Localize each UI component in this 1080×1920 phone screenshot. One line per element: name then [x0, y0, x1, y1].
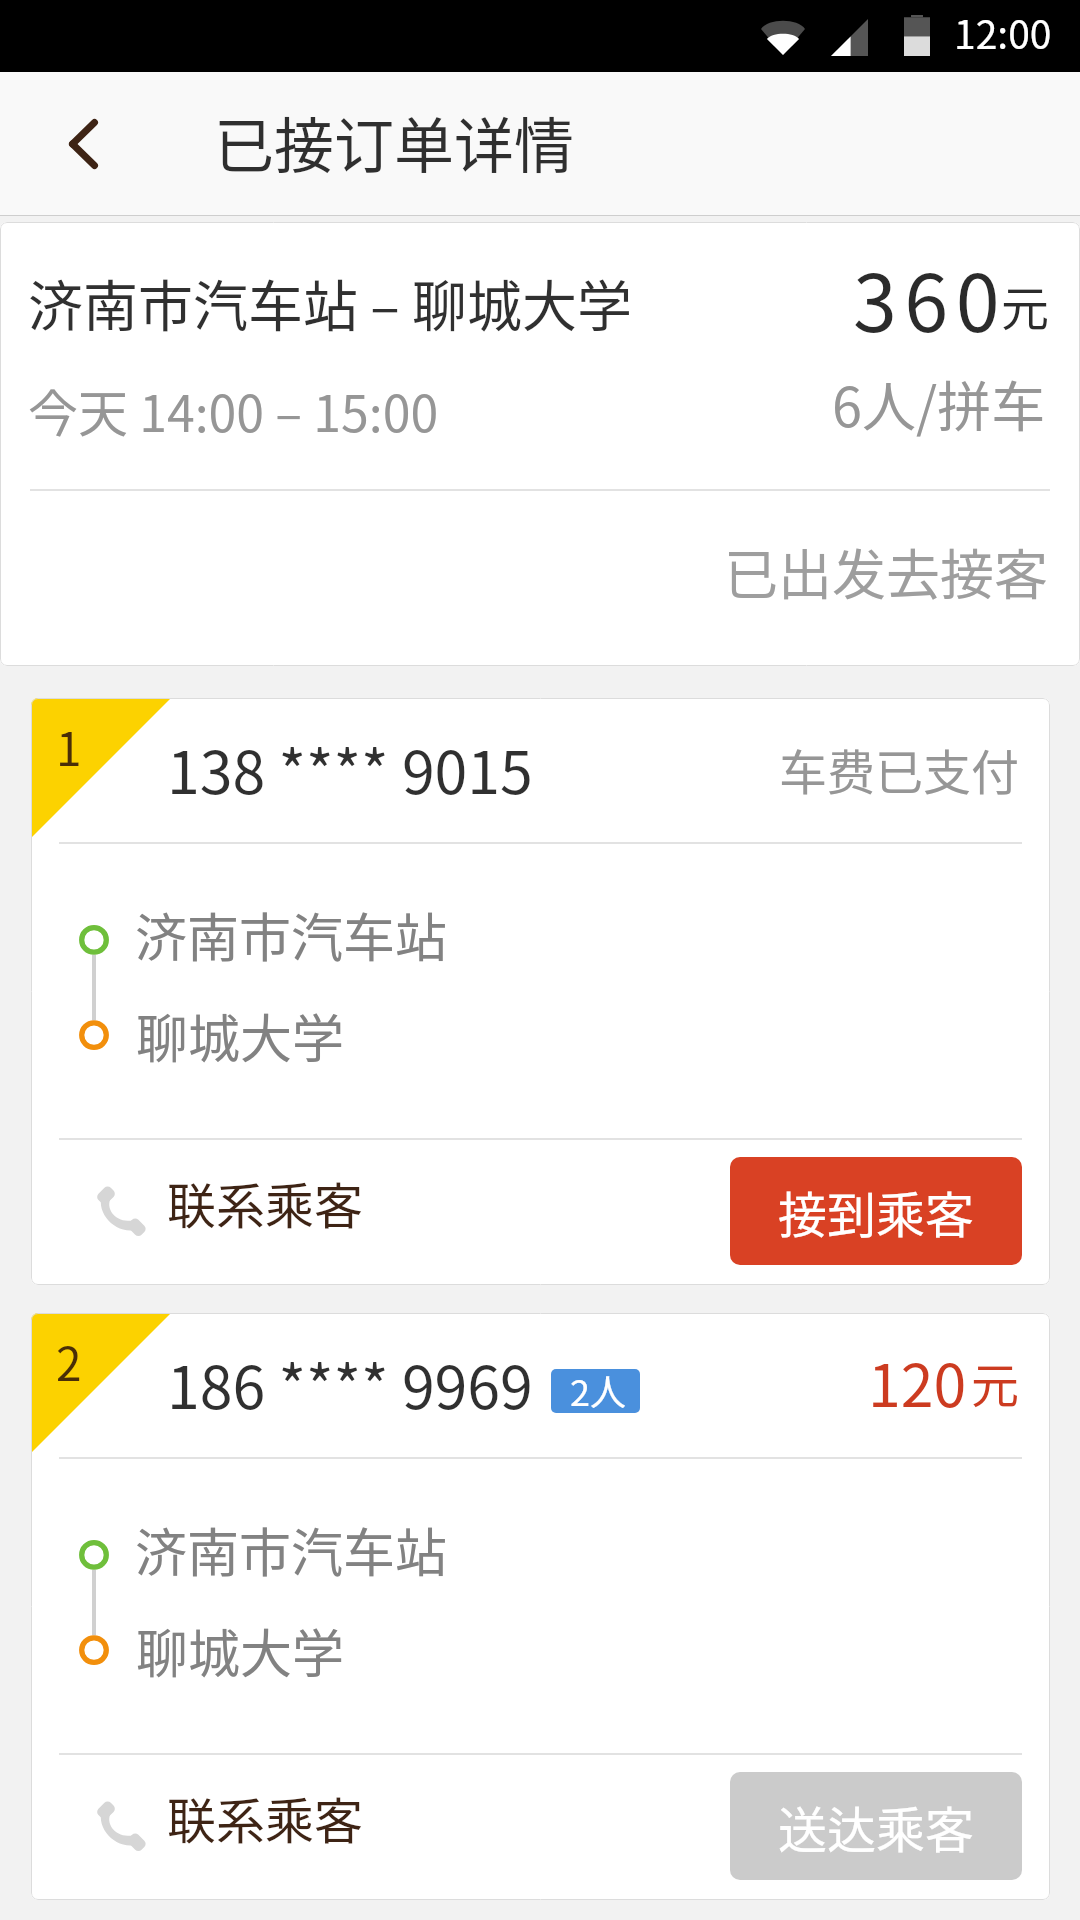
staticText: 送达乘客	[778, 1791, 975, 1862]
button[interactable]: 济南市汽车站 – 聊城大学	[0, 222, 1080, 666]
other: Wi-Fi signal	[761, 18, 805, 55]
staticText: 联系乘客	[167, 1167, 364, 1238]
staticText: 6人/拼车	[832, 364, 1046, 442]
staticText: 聊城大学	[136, 998, 345, 1073]
staticText: 元	[1001, 270, 1050, 340]
staticText: 12:00	[954, 4, 1052, 60]
button[interactable]: 2人	[551, 1369, 640, 1413]
staticText: 接到乘客	[778, 1176, 975, 1247]
staticText: 联系乘客	[167, 1782, 364, 1853]
staticText: 已接订单详情	[214, 98, 574, 185]
staticText: 2	[56, 1328, 82, 1395]
button[interactable]: 联系乘客	[86, 1783, 376, 1863]
staticText: 1	[56, 713, 82, 780]
button[interactable]: 1	[31, 698, 1050, 1285]
staticText: 已出发去接客	[724, 532, 1048, 610]
staticText: 186 **** 9969	[167, 1341, 533, 1426]
staticText: 2人	[570, 1369, 626, 1408]
button[interactable]: 联系乘客	[86, 1168, 376, 1248]
staticText: 济南市汽车站	[135, 897, 448, 972]
button[interactable]: 2	[31, 1313, 1050, 1900]
button[interactable]: 送达乘客	[730, 1772, 1022, 1880]
staticText: 今天 14:00 – 15:00	[28, 374, 439, 446]
staticText: 聊城大学	[136, 1613, 345, 1688]
other: Mobile signal	[831, 19, 868, 56]
other: Battery	[904, 15, 930, 56]
staticText: 360	[853, 240, 1008, 354]
staticText: 济南市汽车站 – 聊城大学	[28, 262, 633, 342]
staticText: 120	[868, 1339, 967, 1424]
button[interactable]: Back	[0, 72, 170, 216]
staticText: 元	[971, 1347, 1020, 1417]
staticText: 济南市汽车站	[135, 1512, 448, 1587]
staticText: 车费已支付	[779, 734, 1020, 804]
button[interactable]: 接到乘客	[730, 1157, 1022, 1265]
staticText: 138 **** 9015	[167, 726, 533, 811]
